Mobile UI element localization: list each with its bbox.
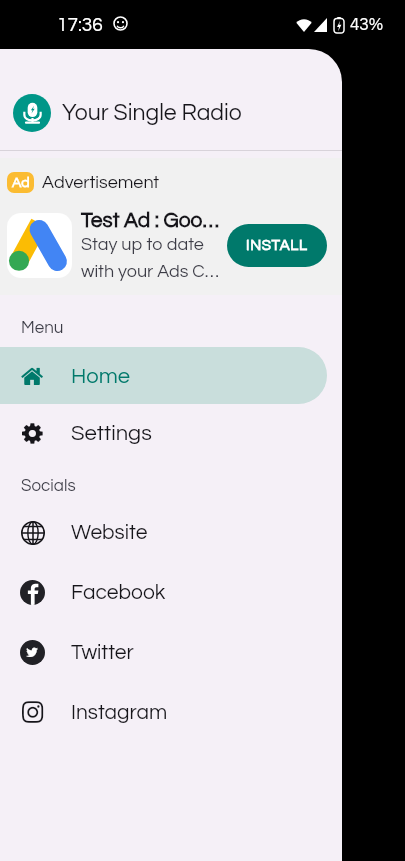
- staticText: INSTALL: [246, 238, 308, 253]
- staticText: 17:36: [57, 15, 103, 35]
- staticText: Test Ad : Goo…: [81, 210, 219, 232]
- button[interactable]: : [0, 622, 342, 682]
- staticText: Home: [71, 365, 131, 388]
- staticText: Your Single Radio: [62, 101, 242, 125]
- button[interactable]: : [0, 682, 342, 742]
- button[interactable]: INSTALL: [227, 224, 327, 267]
- staticText: : [22, 421, 43, 445]
- staticText: Socials: [21, 477, 76, 495]
- staticText: Menu: [21, 319, 64, 337]
- staticText: : [21, 364, 44, 388]
- staticText: Website: [71, 522, 148, 544]
- staticText: Facebook: [71, 582, 166, 604]
- staticText: 43%: [350, 16, 384, 34]
- staticText: Ad: [12, 176, 30, 190]
- button[interactable]: Facebook: [0, 562, 342, 622]
- staticText: Twitter: [71, 642, 134, 664]
- button[interactable]: : [0, 404, 327, 461]
- staticText: Stay up to date with your Ads C…: [81, 235, 222, 281]
- staticText: : [22, 700, 44, 725]
- staticText: Advertisement: [42, 173, 160, 192]
- staticText: : [26, 646, 39, 659]
- staticText: Instagram: [71, 702, 168, 724]
- button[interactable]: Website: [0, 502, 342, 562]
- staticText: Settings: [71, 422, 152, 445]
- button[interactable]: : [0, 347, 327, 404]
